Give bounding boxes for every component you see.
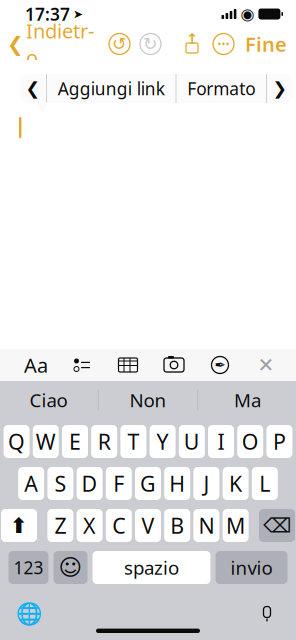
staticText: Ma: [234, 388, 261, 412]
button[interactable]: Ripristina: [135, 28, 166, 59]
button[interactable]: I: [208, 425, 234, 458]
button[interactable]: Maiuscole: [1, 509, 37, 542]
button[interactable]: Formato testo: [19, 352, 53, 378]
staticText: ❮: [7, 33, 24, 55]
button[interactable]: G: [135, 467, 161, 500]
staticText: 🌐: [15, 602, 42, 626]
button[interactable]: Ciao: [0, 381, 98, 419]
staticText: I: [217, 427, 224, 456]
button[interactable]: Cancella: [259, 509, 295, 542]
staticText: J: [203, 469, 209, 498]
button[interactable]: Chiudi tastiera: [249, 352, 283, 378]
staticText: ↑: [186, 31, 198, 47]
staticText: ↻: [143, 34, 158, 54]
staticText: X: [83, 511, 96, 540]
staticText: ❮: [26, 79, 41, 98]
staticText: B: [170, 511, 184, 540]
button[interactable]: R: [91, 425, 117, 458]
button[interactable]: A: [18, 467, 44, 500]
staticText: ☺: [58, 555, 82, 580]
button[interactable]: S: [47, 467, 73, 500]
button[interactable]: P: [266, 425, 292, 458]
staticText: T: [127, 427, 139, 456]
button[interactable]: spazio: [92, 551, 210, 584]
staticText: E: [69, 427, 81, 456]
staticText: ✕: [257, 354, 274, 376]
button[interactable]: U: [179, 425, 205, 458]
staticText: Non: [129, 388, 166, 412]
staticText: ⌫: [263, 514, 291, 537]
staticText: Aa: [24, 352, 48, 378]
staticText: D: [82, 469, 98, 498]
button[interactable]: Altro: [208, 28, 239, 59]
staticText: C: [112, 511, 125, 540]
staticText: ✒: [214, 357, 225, 372]
button[interactable]: B: [164, 509, 190, 542]
staticText: M: [226, 511, 245, 540]
button[interactable]: Emoji: [53, 551, 87, 584]
button[interactable]: T: [120, 425, 146, 458]
staticText: F: [113, 469, 124, 498]
staticText: Y: [157, 427, 169, 456]
button[interactable]: Ma: [198, 381, 296, 419]
button[interactable]: Q: [4, 425, 30, 458]
button[interactable]: J: [193, 467, 219, 500]
button[interactable]: H: [164, 467, 190, 500]
staticText: ⬆: [10, 513, 28, 538]
button[interactable]: Numeri: [8, 551, 48, 584]
staticText: Ciao: [29, 388, 67, 412]
staticText: A: [24, 469, 38, 498]
button[interactable]: Tabella: [111, 352, 145, 378]
staticText: P: [273, 427, 286, 456]
button[interactable]: O: [237, 425, 263, 458]
button[interactable]: Markup: [203, 352, 237, 378]
button[interactable]: Fotocamera: [157, 352, 191, 378]
button[interactable]: D: [77, 467, 103, 500]
staticText: 123: [13, 556, 43, 579]
button[interactable]: N: [193, 509, 219, 542]
button[interactable]: X: [77, 509, 103, 542]
button[interactable]: M: [223, 509, 249, 542]
button[interactable]: invio: [215, 551, 287, 584]
button[interactable]: ❮: [0, 11, 94, 76]
button[interactable]: Condividi: [176, 28, 208, 60]
button[interactable]: K: [223, 467, 249, 500]
button[interactable]: Formato: [176, 74, 266, 103]
button[interactable]: Y: [150, 425, 176, 458]
button[interactable]: Successivo: [267, 74, 293, 103]
staticText: Z: [54, 511, 66, 540]
button[interactable]: Annulla: [104, 28, 135, 59]
staticText: ➤: [73, 7, 83, 21]
button[interactable]: Fine: [239, 25, 296, 63]
staticText: U: [184, 427, 200, 456]
staticText: ❯: [272, 79, 287, 98]
button[interactable]: Elenco di controllo: [65, 352, 99, 378]
staticText: Indietro: [26, 17, 94, 70]
button[interactable]: L: [252, 467, 278, 500]
staticText: O: [242, 427, 259, 456]
staticText: G: [140, 469, 156, 498]
button[interactable]: Cambia tastiera: [12, 599, 46, 629]
staticText: Q: [8, 427, 25, 456]
staticText: Fine: [245, 31, 287, 57]
staticText: R: [98, 427, 111, 456]
button[interactable]: E: [62, 425, 88, 458]
button[interactable]: V: [135, 509, 161, 542]
button[interactable]: Dettatura: [250, 599, 284, 629]
staticText: 17:37: [25, 2, 70, 25]
button[interactable]: F: [106, 467, 132, 500]
button[interactable]: Non: [99, 381, 197, 419]
button[interactable]: Z: [47, 509, 73, 542]
staticText: H: [169, 469, 185, 498]
staticText: spazio: [124, 555, 179, 580]
staticText: Aggiungi link: [58, 77, 165, 100]
button[interactable]: Precedente: [20, 74, 46, 103]
staticText: ◉: [240, 5, 254, 23]
staticText: W: [36, 427, 56, 456]
staticText: V: [141, 511, 154, 540]
button[interactable]: Aggiungi link: [47, 74, 176, 103]
button[interactable]: C: [106, 509, 132, 542]
button[interactable]: W: [33, 425, 59, 458]
staticText: ↺: [112, 34, 127, 54]
staticText: K: [229, 469, 242, 498]
